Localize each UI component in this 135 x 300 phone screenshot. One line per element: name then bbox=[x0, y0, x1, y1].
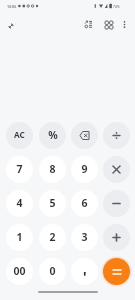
staticText: 8 bbox=[49, 162, 56, 176]
button[interactable]: 9 bbox=[71, 156, 98, 183]
staticText: 3 bbox=[81, 230, 88, 244]
button[interactable]: 4 bbox=[6, 190, 33, 217]
button[interactable]: Keypad layout bbox=[100, 16, 117, 33]
staticText: 4 bbox=[16, 196, 23, 210]
staticText: 9 bbox=[81, 162, 88, 176]
button[interactable]: 2 bbox=[39, 224, 66, 251]
button[interactable] bbox=[103, 258, 130, 285]
button[interactable] bbox=[71, 258, 98, 285]
button[interactable]: % bbox=[39, 122, 66, 149]
button[interactable] bbox=[71, 122, 98, 149]
staticText: 2 bbox=[49, 230, 56, 244]
button[interactable]: 0 bbox=[39, 258, 66, 285]
button[interactable]: 6 bbox=[71, 190, 98, 217]
staticText: 1 bbox=[16, 230, 23, 244]
button[interactable] bbox=[103, 190, 130, 217]
button[interactable]: 3 bbox=[71, 224, 98, 251]
button[interactable]: More options bbox=[116, 16, 133, 33]
staticText: 6 bbox=[81, 196, 88, 210]
button[interactable]: 8 bbox=[39, 156, 66, 183]
button[interactable] bbox=[103, 122, 130, 149]
button[interactable]: 7 bbox=[6, 156, 33, 183]
button[interactable]: 1 bbox=[6, 224, 33, 251]
staticText: 10:06 bbox=[7, 4, 17, 9]
staticText: 74% bbox=[113, 4, 120, 9]
button[interactable] bbox=[103, 156, 130, 183]
staticText: 5 bbox=[49, 196, 56, 210]
staticText: 00 bbox=[13, 264, 26, 278]
button[interactable]: AC bbox=[6, 122, 33, 149]
staticText: % bbox=[48, 128, 58, 142]
staticText: 7 bbox=[16, 162, 23, 176]
staticText: 0 bbox=[49, 264, 56, 278]
button[interactable]: 00 bbox=[6, 258, 33, 285]
button[interactable] bbox=[103, 224, 130, 251]
button[interactable]: Unit converter bbox=[80, 16, 97, 33]
button[interactable]: Collapse bbox=[2, 17, 20, 35]
staticText: AC bbox=[14, 129, 25, 140]
button[interactable]: 5 bbox=[39, 190, 66, 217]
